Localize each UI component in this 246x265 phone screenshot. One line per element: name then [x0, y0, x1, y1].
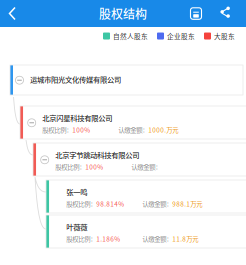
staticText: 认缴金额：: [142, 234, 172, 243]
staticText: 988.1万元: [172, 199, 202, 208]
staticText: 98.814%: [96, 199, 124, 208]
staticText: 11.8万元: [172, 234, 198, 243]
button[interactable]: 运城市阳光文化传媒有限公司: [10, 65, 243, 95]
staticText: 股权比例：: [66, 199, 96, 208]
staticText: 北京字节跳动科技有限公司: [55, 149, 139, 160]
staticText: 1000.万元: [148, 125, 178, 134]
button[interactable]: Back: [0, 0, 28, 27]
staticText: 股权比例：: [42, 125, 72, 134]
staticText: 股权比例：: [55, 162, 85, 171]
button[interactable]: 张一鸣: [46, 180, 246, 213]
staticText: 认缴金额：: [131, 162, 161, 171]
button[interactable]: 北京闪星科技有限公司: [20, 106, 246, 139]
staticText: 股权结构: [99, 5, 147, 22]
staticText: 股权比例：: [66, 234, 96, 243]
button[interactable]: Save: [188, 0, 204, 27]
staticText: 叶薇薇: [66, 221, 87, 232]
staticText: 100%: [72, 125, 90, 134]
staticText: 认缴金额：: [142, 199, 172, 208]
staticText: 100%: [85, 162, 103, 171]
staticText: 企业股东: [167, 31, 195, 41]
staticText: 1.186%: [96, 234, 120, 243]
staticText: 北京闪星科技有限公司: [42, 112, 112, 123]
button[interactable]: Share: [217, 0, 233, 27]
staticText: 自然人股东: [113, 31, 148, 41]
button[interactable]: 北京字节跳动科技有限公司: [33, 143, 246, 176]
staticText: 大股东: [214, 31, 235, 41]
button[interactable]: 叶薇薇: [46, 215, 246, 248]
staticText: 张一鸣: [66, 186, 87, 197]
staticText: 认缴金额：: [118, 125, 148, 134]
staticText: 运城市阳光文化传媒有限公司: [30, 74, 121, 85]
